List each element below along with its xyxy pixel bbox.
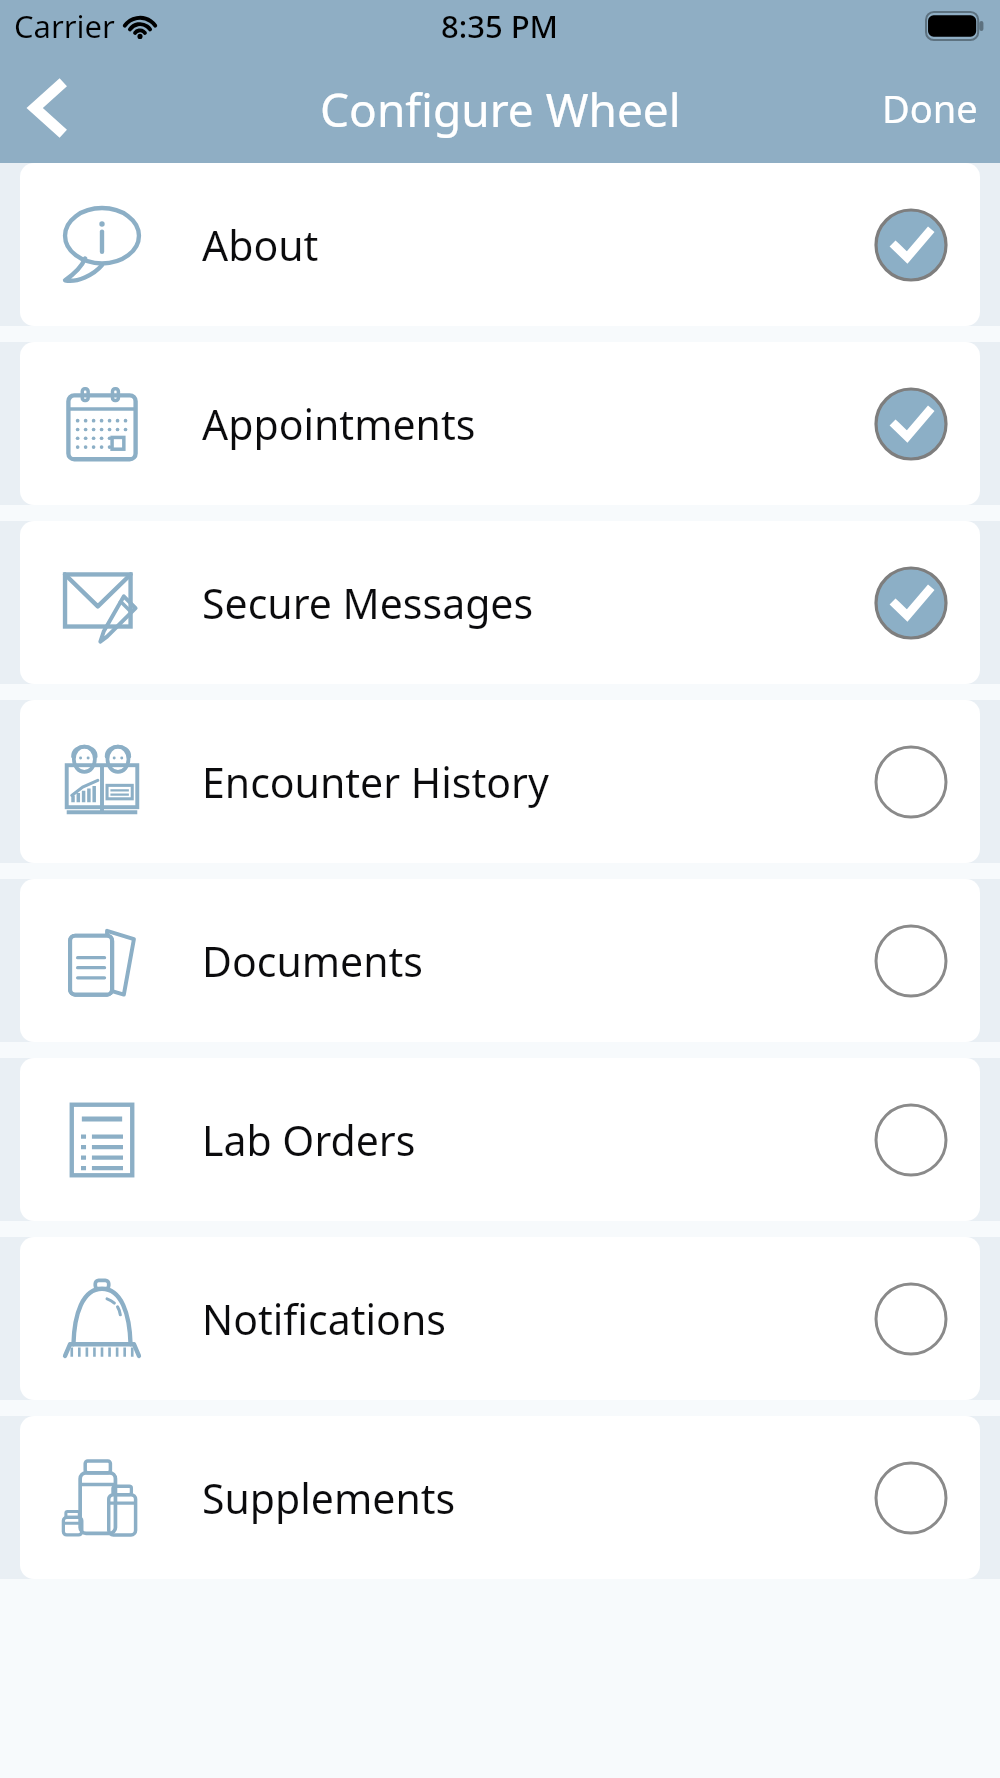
button[interactable]: Enabled (868, 381, 954, 467)
button[interactable]: Supplements (20, 1416, 980, 1579)
button[interactable]: Disabled (868, 739, 954, 825)
button[interactable]: Enabled (868, 202, 954, 288)
button[interactable]: Back (12, 71, 86, 145)
staticText: Documents (202, 933, 423, 989)
button[interactable]: Disabled (868, 1097, 954, 1183)
staticText: Notifications (202, 1291, 446, 1347)
staticText: Encounter History (202, 754, 549, 810)
staticText: Secure Messages (202, 575, 534, 631)
button[interactable]: Notifications (20, 1237, 980, 1400)
staticText: Supplements (202, 1470, 456, 1526)
staticText: Lab Orders (202, 1112, 416, 1168)
staticText: Configure Wheel (320, 78, 681, 141)
button[interactable]: Appointments (20, 342, 980, 505)
button[interactable]: Documents (20, 879, 980, 1042)
button[interactable]: Lab Orders (20, 1058, 980, 1221)
staticText: 8:35 PM (441, 5, 559, 47)
button[interactable]: About (20, 163, 980, 326)
button[interactable]: Disabled (868, 918, 954, 1004)
staticText: Carrier (14, 5, 115, 47)
staticText: Appointments (202, 396, 476, 452)
button[interactable]: Secure Messages (20, 521, 980, 684)
button[interactable]: Enabled (868, 560, 954, 646)
button[interactable]: Disabled (868, 1276, 954, 1362)
staticText: Done (882, 82, 978, 134)
button[interactable]: Encounter History (20, 700, 980, 863)
button[interactable]: Done (860, 68, 1000, 148)
staticText: About (202, 217, 319, 273)
button[interactable]: Disabled (868, 1455, 954, 1541)
